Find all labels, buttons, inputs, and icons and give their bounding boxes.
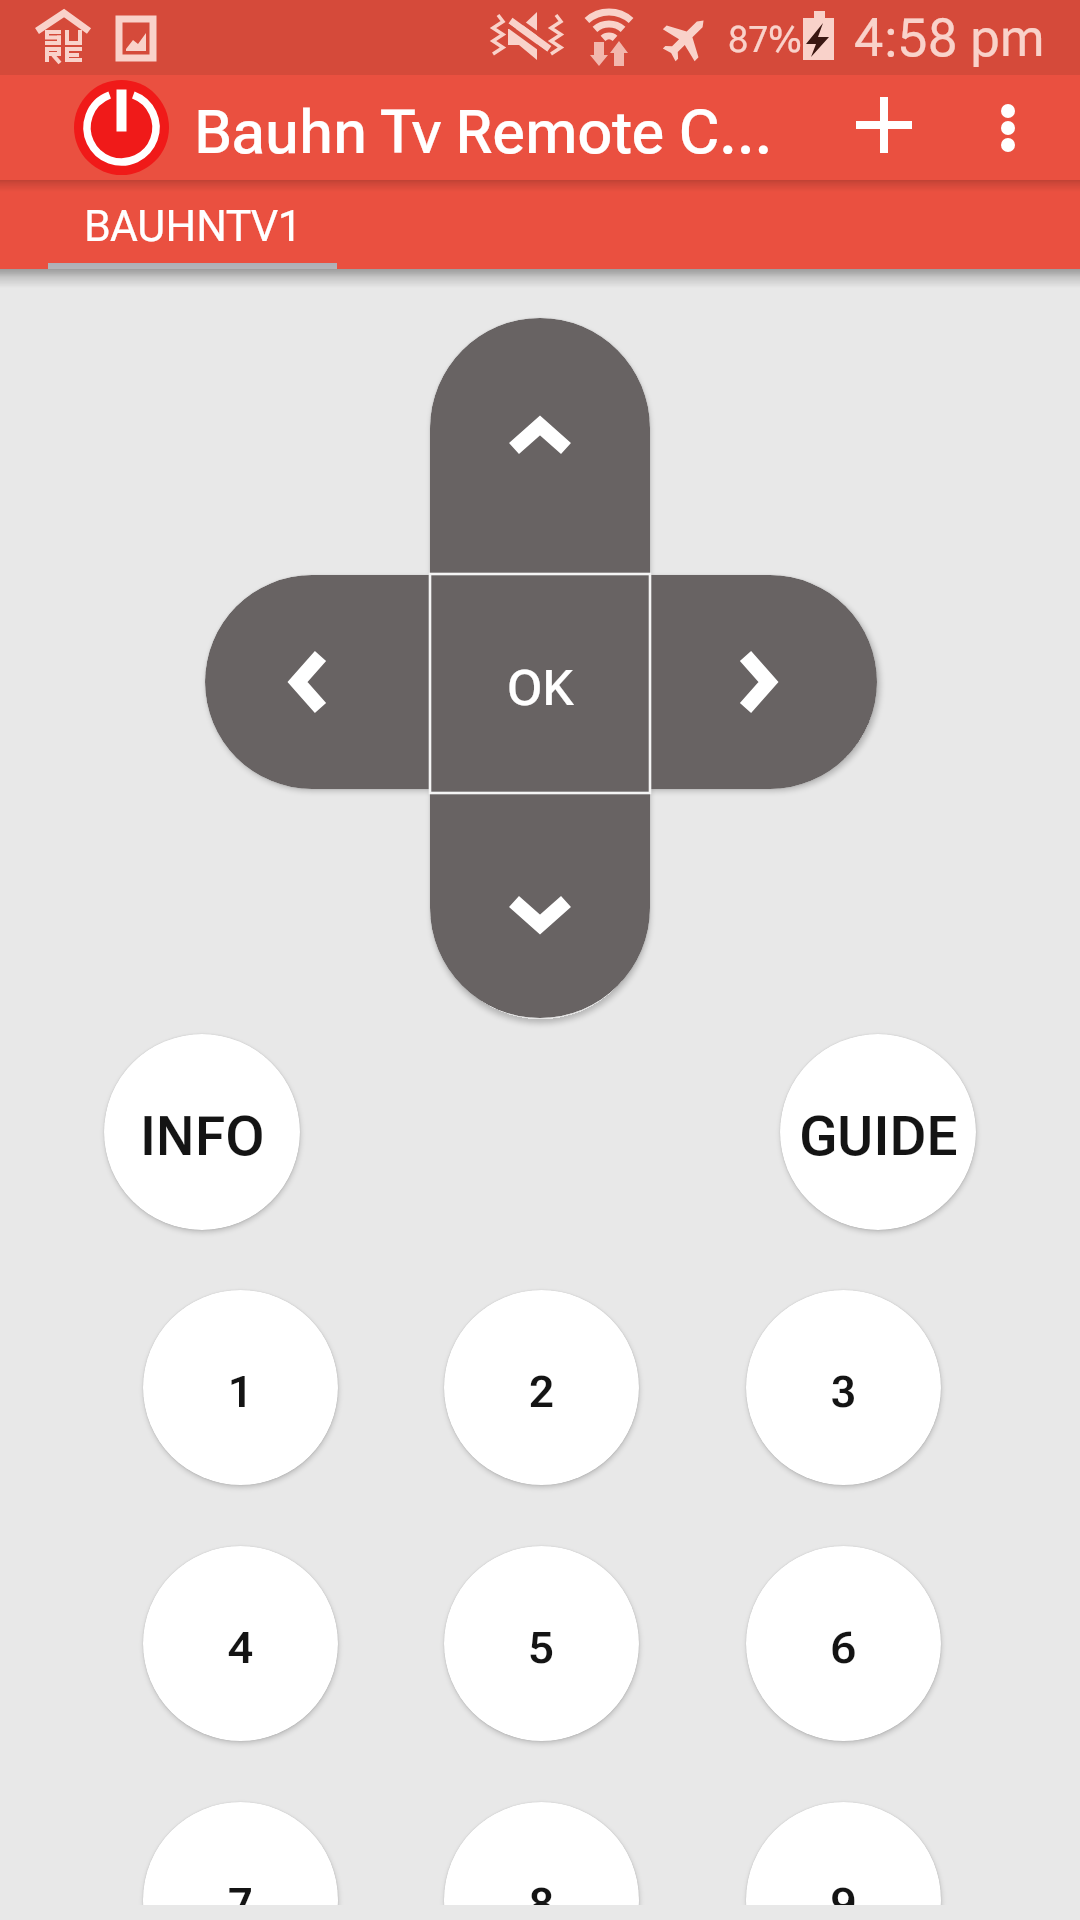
button[interactable]: 2: [444, 1290, 639, 1485]
button[interactable]: Right: [650, 575, 877, 789]
button[interactable]: OK: [430, 574, 650, 793]
staticText: 1: [228, 1366, 253, 1418]
staticText: BAUHNTV1: [84, 201, 303, 251]
button[interactable]: Power: [74, 80, 169, 175]
button[interactable]: 4: [143, 1546, 338, 1741]
staticText: INFO: [140, 1105, 265, 1168]
staticText: 6: [831, 1622, 856, 1674]
button[interactable]: Add: [832, 73, 936, 177]
button[interactable]: 5: [444, 1546, 639, 1741]
button[interactable]: 8: [444, 1802, 639, 1905]
staticText: 2: [529, 1366, 554, 1418]
staticText: 5: [529, 1622, 554, 1674]
staticText: OK: [507, 660, 574, 717]
button[interactable]: More options: [956, 76, 1060, 180]
button[interactable]: 6: [746, 1546, 941, 1741]
button[interactable]: 3: [746, 1290, 941, 1485]
staticText: GUIDE: [799, 1105, 958, 1168]
staticText: 9: [831, 1878, 856, 1905]
button[interactable]: 9: [746, 1802, 941, 1905]
button[interactable]: Up: [430, 318, 650, 575]
button[interactable]: Down: [430, 789, 650, 1018]
staticText: 3: [831, 1366, 856, 1418]
staticText: 8: [529, 1878, 554, 1905]
button[interactable]: INFO: [104, 1034, 300, 1230]
staticText: Bauhn Tv Remote C...: [194, 97, 773, 167]
button[interactable]: GUIDE: [780, 1034, 976, 1230]
staticText: 4:58 pm: [854, 8, 1045, 69]
staticText: 7: [228, 1878, 253, 1905]
button[interactable]: 1: [143, 1290, 338, 1485]
button[interactable]: BAUHNTV1: [0, 180, 1080, 269]
button[interactable]: Left: [205, 575, 430, 789]
button[interactable]: 7: [143, 1802, 338, 1905]
staticText: 4: [228, 1622, 253, 1674]
staticText: 87%: [728, 19, 802, 61]
